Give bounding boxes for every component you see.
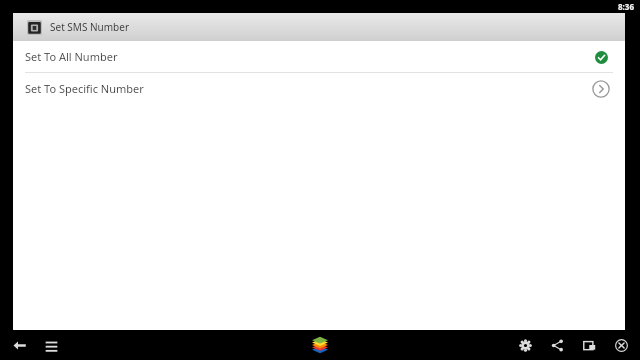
staticText: Set To Specific Number <box>25 81 144 96</box>
staticText: Set SMS Number <box>50 20 130 34</box>
staticText: 8:36 <box>618 1 634 12</box>
button[interactable]: Settings <box>514 334 536 356</box>
button[interactable]: Back <box>8 334 30 356</box>
button[interactable]: Selected <box>591 47 611 67</box>
button[interactable]: Set To All Number <box>13 41 625 72</box>
button[interactable]: Set To Specific Number <box>13 73 625 104</box>
button[interactable]: Resize window <box>578 334 600 356</box>
button[interactable]: Menu <box>40 334 62 356</box>
button[interactable]: Share <box>546 334 568 356</box>
button[interactable]: Home <box>307 332 333 358</box>
button[interactable]: Close <box>610 334 632 356</box>
button[interactable]: Set to specific number <box>591 79 611 99</box>
staticText: Set To All Number <box>25 49 118 64</box>
